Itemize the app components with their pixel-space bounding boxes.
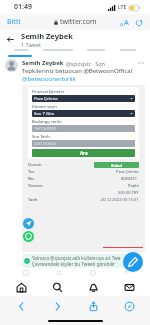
staticText: Tarih <box>28 197 101 202</box>
button[interactable]: Home <box>6 278 36 296</box>
button[interactable]: Son 7 Gün <box>34 110 133 117</box>
staticText: @sjszsjsiz · Son <box>66 60 105 67</box>
staticText: 01:49 <box>14 2 32 12</box>
staticText: LTE <box>118 4 127 11</box>
button[interactable]: Reply <box>22 269 30 277</box>
button[interactable]: Ara <box>32 149 135 157</box>
button[interactable]: Forward <box>42 296 72 317</box>
button[interactable]: Share <box>122 269 130 277</box>
staticText: 500.00 TRY <box>118 190 139 195</box>
staticText: 23/12/2022 <box>34 141 57 147</box>
button[interactable]: Share <box>78 296 108 317</box>
staticText: Dönem seçin <box>32 104 57 109</box>
button[interactable]: Text size <box>120 17 129 27</box>
button[interactable]: Yalnızca @sjszsjsiz adlı kullanıcıya ait… <box>24 255 130 267</box>
staticText: Yalnızca @sjszsjsiz adlı kullanıcıya ait… <box>32 255 121 261</box>
staticText: twitter.com <box>60 17 97 27</box>
staticText: Başlangıç tarihi <box>32 119 62 124</box>
button[interactable]: Para Çekme <box>34 95 133 102</box>
button[interactable]: WhatsApp <box>23 231 34 242</box>
button[interactable]: Search <box>42 278 72 296</box>
staticText: 20.12.2022 00:13:31 <box>101 197 139 202</box>
button[interactable]: Finansal İşlemler <box>22 85 145 252</box>
staticText: No: <box>28 176 121 181</box>
button[interactable]: Tabs <box>114 296 144 317</box>
staticText: Semih Zeybek <box>22 59 64 67</box>
staticText: Para Çekme <box>34 96 130 102</box>
staticText: Tür <box>28 169 116 174</box>
staticText: a <box>120 20 124 27</box>
staticText: 1 Tweet <box>21 41 42 48</box>
staticText: 16/12/2022 <box>34 126 57 132</box>
staticText: Tepkileriniz betuocan @BetwoonOffical <box>22 67 133 75</box>
button[interactable]: More options <box>137 59 145 67</box>
button[interactable]: Bitti <box>7 17 21 27</box>
button[interactable]: Telegram <box>23 218 34 229</box>
button[interactable]: Like <box>89 269 97 277</box>
button[interactable]: Back <box>6 296 36 317</box>
staticText: Son Tarih <box>32 134 50 139</box>
staticText: Yöntem <box>28 183 128 188</box>
staticText: Finansal İşlemler <box>32 89 65 94</box>
staticText: Son 7 Gün <box>34 111 130 117</box>
staticText: Ara <box>80 150 88 156</box>
button[interactable]: Profile photo <box>5 59 18 72</box>
button[interactable]: Back <box>6 35 15 44</box>
staticText: Papfa <box>128 183 139 188</box>
staticText: A <box>124 17 129 27</box>
staticText: Para Çekme <box>116 169 139 174</box>
button[interactable]: Notifications <box>78 278 108 296</box>
staticText: 8280451 <box>121 176 139 181</box>
button[interactable]: Reload <box>135 19 143 27</box>
button[interactable]: Messages <box>114 278 144 296</box>
staticText: Durum <box>28 162 94 167</box>
staticText: Semih Zeybek <box>21 31 73 41</box>
button[interactable]: Retweet <box>55 269 63 277</box>
button[interactable]: Compose Tweet <box>123 252 143 272</box>
staticText: Kabul <box>111 163 122 168</box>
staticText: @betwooonerbirlik <box>22 75 76 83</box>
staticText: Çevresindeki kişiler bu Tweeti görebilir <box>32 261 115 267</box>
